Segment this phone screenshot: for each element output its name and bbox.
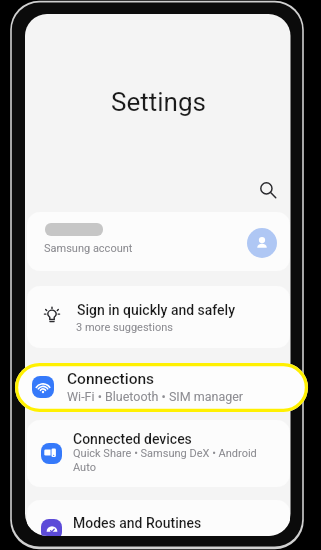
- staticText: Wi-Fi • Bluetooth • SIM manager: [67, 389, 244, 404]
- staticText: 3 more suggestions: [76, 321, 173, 334]
- button[interactable]: Modes and Routines: [27, 500, 290, 536]
- button[interactable]: Samsung account: [27, 212, 290, 271]
- staticText: Quick Share • Samsung DeX • Android Auto: [73, 447, 273, 474]
- staticText: Connections: [67, 370, 155, 388]
- button[interactable]: Connections: [15, 363, 308, 412]
- staticText: Settings: [111, 87, 206, 117]
- staticText: Modes and Routines: [73, 515, 202, 531]
- staticText: Sign in quickly and safely: [77, 302, 236, 318]
- staticText: Connected devices: [73, 431, 192, 447]
- button[interactable]: [27, 363, 290, 405]
- staticText: Samsung account: [44, 242, 133, 255]
- button[interactable]: Sign in quickly and safely: [27, 286, 290, 348]
- button[interactable]: Search: [252, 174, 284, 206]
- button[interactable]: Connected devices: [27, 420, 290, 487]
